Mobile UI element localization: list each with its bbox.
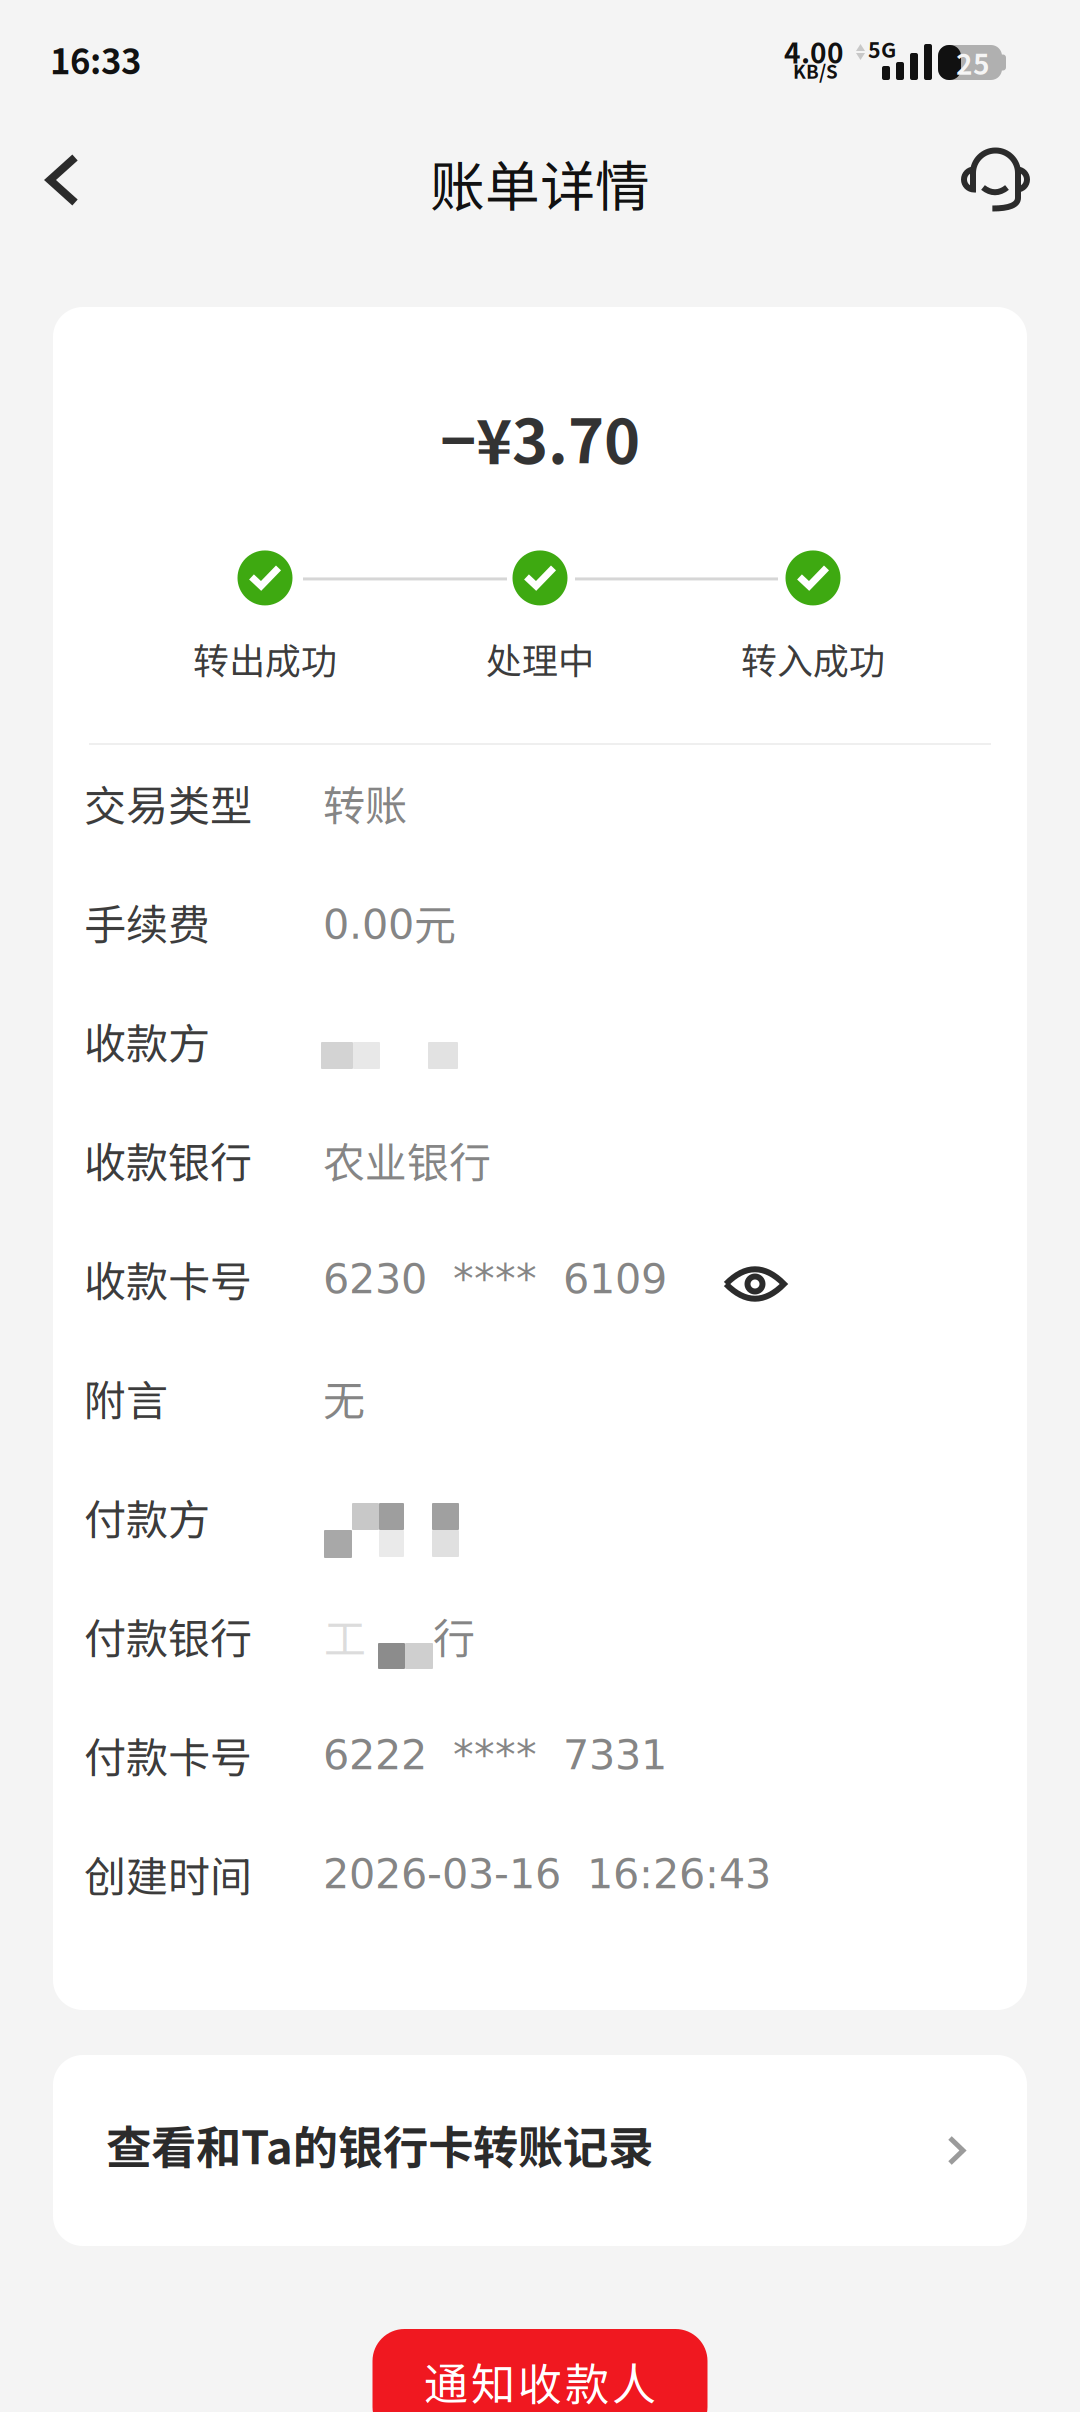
staticText: 账单详情 bbox=[430, 143, 650, 223]
staticText: 4.00 bbox=[784, 31, 844, 71]
button[interactable]: 通 知 收 款 人 bbox=[372, 2329, 707, 2412]
staticText: 处理中 bbox=[486, 632, 594, 684]
staticText: 收款卡号 bbox=[84, 1249, 252, 1309]
staticText: KB/S bbox=[793, 57, 838, 84]
staticText: 无 bbox=[323, 1368, 365, 1428]
staticText: 农业银行 bbox=[323, 1130, 491, 1190]
staticText: 转账 bbox=[323, 773, 407, 833]
staticText: 创建时间 bbox=[84, 1844, 252, 1904]
staticText: 6230 **** 6109 bbox=[323, 1255, 667, 1303]
staticText: 工 bbox=[324, 1606, 366, 1666]
staticText: 通 知 收 款 人 bbox=[424, 2349, 656, 2412]
staticText: 手续费 bbox=[84, 892, 210, 952]
staticText: 收款方 bbox=[84, 1011, 210, 1071]
staticText: 付款银行 bbox=[84, 1606, 252, 1666]
staticText: 付款方 bbox=[84, 1487, 210, 1547]
staticText: 0.00元 bbox=[323, 892, 456, 952]
staticText: 6222 **** 7331 bbox=[323, 1731, 667, 1778]
button[interactable]: 查看和Ta的银行卡转账记录 bbox=[53, 2055, 1027, 2246]
staticText: 转入成功 bbox=[741, 632, 885, 684]
staticText: 收款银行 bbox=[84, 1130, 252, 1190]
staticText: 付款卡号 bbox=[84, 1725, 252, 1785]
button[interactable]: Show card number bbox=[726, 1263, 784, 1294]
staticText: 交易类型 bbox=[84, 773, 252, 833]
staticText: 16:33 bbox=[50, 34, 141, 84]
staticText: 附言 bbox=[84, 1368, 168, 1428]
staticText: 2026-03-16 16:26:43 bbox=[323, 1850, 771, 1897]
staticText: 查看和Ta的银行卡转账记录 bbox=[106, 2112, 653, 2177]
staticText: −¥3.70 bbox=[440, 393, 640, 481]
button[interactable]: Customer service bbox=[926, 121, 1064, 228]
staticText: 25 bbox=[956, 42, 990, 83]
staticText: 转出成功 bbox=[193, 632, 337, 684]
staticText: 5G bbox=[868, 33, 896, 64]
button[interactable]: Back bbox=[16, 120, 115, 229]
staticText: 行 bbox=[433, 1606, 475, 1666]
